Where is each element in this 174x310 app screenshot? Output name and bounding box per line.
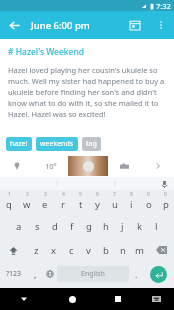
- staticText: t: [79, 198, 83, 211]
- button[interactable]: More options: [148, 12, 174, 38]
- staticText: # Hazel's Weekend: [8, 46, 85, 58]
- staticText: x: [51, 244, 57, 257]
- staticText: q: [6, 198, 12, 211]
- button[interactable]: l: [148, 214, 165, 238]
- button[interactable]: .: [129, 262, 143, 286]
- staticText: z: [34, 244, 39, 257]
- button[interactable]: b: [97, 238, 114, 262]
- button[interactable]: Enter: [143, 262, 174, 286]
- button[interactable]: 10°: [34, 155, 68, 177]
- staticText: s: [35, 220, 40, 233]
- staticText: p: [163, 198, 169, 211]
- button[interactable]: v: [80, 238, 97, 262]
- staticText: c: [69, 244, 74, 257]
- staticText: .: [135, 268, 138, 280]
- button[interactable]: English: [57, 266, 129, 282]
- staticText: 5: [79, 191, 82, 198]
- button[interactable]: Camera: [108, 155, 141, 177]
- button[interactable]: Home: [48, 288, 97, 310]
- button[interactable]: Location: [0, 155, 34, 177]
- staticText: d: [52, 220, 58, 233]
- button[interactable]: Change language: [42, 262, 57, 286]
- staticText: f: [70, 220, 74, 233]
- staticText: hazel: [10, 139, 28, 149]
- button[interactable]: d: [46, 214, 63, 238]
- staticText: ,: [34, 268, 37, 280]
- button[interactable]: n: [114, 238, 131, 262]
- button[interactable]: Event: [122, 12, 148, 38]
- button[interactable]: 6: [89, 190, 106, 214]
- staticText: weekends: [40, 139, 74, 149]
- button[interactable]: Shift: [0, 238, 27, 262]
- staticText: Hazel loved playing her cousin's ukulele…: [8, 65, 166, 119]
- button[interactable]: 9: [140, 190, 157, 214]
- staticText: 4: [62, 191, 65, 198]
- staticText: 9: [147, 191, 150, 198]
- staticText: b: [103, 244, 109, 257]
- button[interactable]: f: [63, 214, 80, 238]
- staticText: o: [146, 198, 152, 211]
- button[interactable]: Recents: [97, 288, 139, 310]
- button[interactable]: tag: [82, 137, 101, 151]
- button[interactable]: 2: [18, 190, 36, 214]
- button[interactable]: k: [131, 214, 148, 238]
- button[interactable]: Photo: [68, 156, 108, 176]
- button[interactable]: 4: [54, 190, 72, 214]
- staticText: 10°: [45, 161, 57, 171]
- button[interactable]: Back: [0, 11, 28, 39]
- staticText: k: [137, 220, 143, 233]
- staticText: tag: [86, 139, 97, 149]
- staticText: g: [86, 220, 92, 233]
- staticText: 2: [26, 191, 29, 198]
- button[interactable]: ,: [28, 262, 42, 286]
- staticText: 0: [164, 191, 167, 198]
- staticText: 1: [8, 191, 11, 198]
- staticText: v: [86, 244, 91, 257]
- staticText: 7:32: [156, 1, 171, 11]
- button[interactable]: g: [80, 214, 97, 238]
- staticText: June 6:00 pm: [31, 19, 90, 32]
- staticText: a: [16, 220, 22, 233]
- button[interactable]: Backspace: [148, 238, 174, 262]
- button[interactable]: 0: [157, 190, 174, 214]
- staticText: l: [155, 220, 158, 233]
- staticText: 6: [96, 191, 99, 198]
- button[interactable]: m: [131, 238, 148, 262]
- staticText: 7: [113, 191, 116, 198]
- staticText: h: [103, 220, 109, 233]
- button[interactable]: ?123: [0, 262, 28, 286]
- button[interactable]: c: [63, 238, 80, 262]
- staticText: i: [130, 198, 133, 211]
- button[interactable]: j: [114, 214, 131, 238]
- button[interactable]: 3: [36, 190, 54, 214]
- button[interactable]: z: [27, 238, 45, 262]
- button[interactable]: hazel: [6, 137, 32, 151]
- staticText: w: [23, 198, 31, 211]
- staticText: j: [121, 220, 124, 233]
- button[interactable]: Keyboard: [139, 288, 174, 310]
- button[interactable]: a: [10, 214, 28, 238]
- staticText: n: [120, 244, 126, 257]
- staticText: 8: [130, 191, 133, 198]
- button[interactable]: More: [141, 155, 174, 177]
- button[interactable]: weekends: [36, 137, 78, 151]
- staticText: u: [112, 198, 118, 211]
- staticText: r: [61, 198, 65, 211]
- button[interactable]: 5: [72, 190, 89, 214]
- staticText: ?123: [6, 269, 22, 279]
- button[interactable]: s: [28, 214, 46, 238]
- button[interactable]: 7: [106, 190, 123, 214]
- button[interactable]: 1: [0, 190, 18, 214]
- staticText: English: [81, 269, 105, 279]
- button[interactable]: x: [45, 238, 63, 262]
- button[interactable]: 8: [123, 190, 140, 214]
- staticText: m: [135, 244, 144, 257]
- button[interactable]: Hide keyboard: [0, 288, 48, 310]
- staticText: e: [42, 198, 48, 211]
- button[interactable]: Voice input: [159, 179, 169, 189]
- staticText: y: [95, 198, 100, 211]
- button[interactable]: h: [97, 214, 114, 238]
- staticText: 3: [44, 191, 47, 198]
